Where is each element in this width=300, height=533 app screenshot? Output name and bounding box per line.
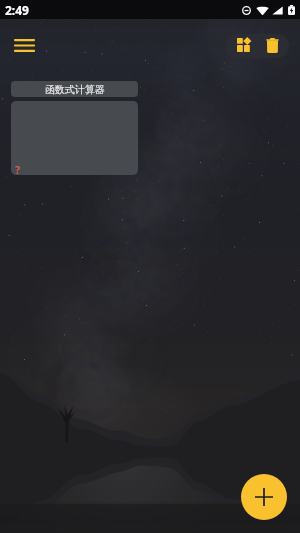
button[interactable]: Widgets: [233, 34, 255, 56]
button[interactable]: Add: [241, 474, 287, 520]
button[interactable]: 函数式计算器: [11, 81, 138, 97]
button[interactable]: Menu: [6, 27, 42, 63]
staticText: 函数式计算器: [45, 83, 105, 96]
staticText: 2:49: [5, 2, 29, 18]
staticText: ?: [15, 162, 21, 175]
button[interactable]: Delete: [261, 34, 283, 56]
button[interactable]: ?: [11, 101, 138, 175]
